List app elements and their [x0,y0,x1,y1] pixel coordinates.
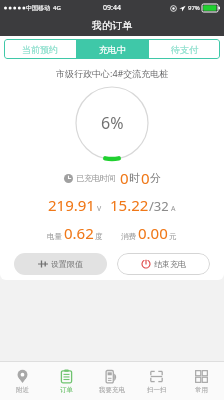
button[interactable]: 设置限值 [14,253,107,275]
staticText: 常用 [195,386,208,394]
staticText: V [97,204,102,214]
button[interactable]: 我要充电 [89,362,134,400]
staticText: 度 [95,232,103,241]
staticText: 时 [129,171,140,185]
staticText: 设置限值 [51,259,83,269]
staticText: 已充电时间 [76,173,116,183]
staticText: 0.00 [138,223,168,243]
staticText: 订单 [60,386,73,394]
staticText: 我要充电 [99,386,125,394]
staticText: 219.91 [48,195,95,215]
staticText: /32 [149,197,169,215]
button[interactable]: 待支付 [149,39,220,59]
staticText: 我的订单 [92,19,132,32]
button[interactable]: 附近 [0,362,44,400]
staticText: 0 [141,168,150,188]
staticText: 充电中 [99,44,126,55]
staticText: 市级行政中心:4#交流充电桩 [56,67,169,79]
button[interactable]: 当前预约 [4,39,76,59]
button[interactable]: 常用 [179,362,224,400]
staticText: 扫一扫 [147,386,167,394]
staticText: 当前预约 [22,44,58,55]
staticText: 0.62 [64,223,94,243]
staticText: 97% [188,4,200,12]
staticText: 附近 [16,386,29,394]
staticText: 09:44 [103,3,121,13]
staticText: 待支付 [171,44,198,55]
staticText: 6% [101,112,124,134]
staticText: 中国移动 [26,4,50,12]
staticText: 4G [53,4,61,12]
staticText: 消费 [121,232,136,241]
staticText: 15.22 [110,195,149,215]
staticText: 结束充电 [154,259,186,269]
button[interactable]: 扫一扫 [134,362,179,400]
button[interactable]: 充电中 [77,39,148,59]
button[interactable]: 订单 [44,362,89,400]
staticText: 0 [120,168,129,188]
staticText: A [171,204,176,214]
staticText: 分 [150,171,161,185]
button[interactable]: 结束充电 [117,253,210,275]
staticText: 元 [169,232,177,241]
staticText: 电量 [47,232,62,241]
